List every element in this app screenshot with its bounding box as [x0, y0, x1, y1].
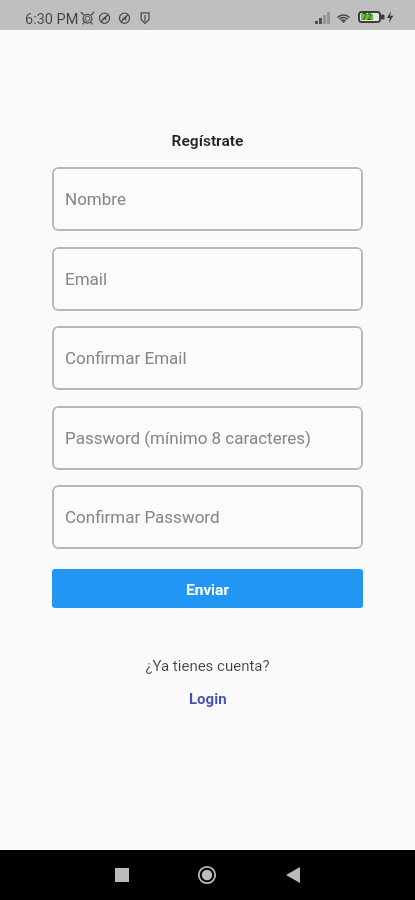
button[interactable]: Login — [181, 686, 235, 712]
staticText: Confirmar Password — [65, 507, 220, 527]
staticText: ¿Ya tienes cuenta? — [0, 657, 415, 675]
button[interactable]: Nombre — [52, 167, 363, 231]
button[interactable]: Back — [269, 851, 317, 899]
staticText: 6:30 PM — [25, 11, 79, 28]
staticText: Regístrate — [0, 132, 415, 150]
staticText: Login — [189, 690, 227, 708]
staticText: Enviar — [186, 581, 229, 599]
button[interactable]: Home — [183, 851, 231, 899]
button[interactable]: Email — [52, 247, 363, 311]
button[interactable]: Recent apps — [98, 851, 146, 899]
staticText: Confirmar Email — [65, 348, 187, 368]
staticText: Nombre — [65, 189, 126, 209]
staticText: Email — [65, 269, 108, 289]
button[interactable]: Confirmar Password — [52, 485, 363, 549]
button[interactable]: Enviar — [52, 569, 363, 608]
button[interactable]: Password (mínimo 8 caracteres) — [52, 406, 363, 470]
button[interactable]: Confirmar Email — [52, 326, 363, 390]
staticText: Password (mínimo 8 caracteres) — [65, 428, 311, 448]
staticText: 72 — [362, 12, 372, 22]
